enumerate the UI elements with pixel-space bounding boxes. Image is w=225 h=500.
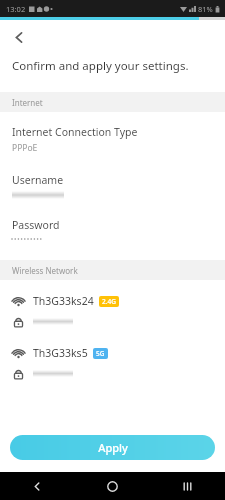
staticText: 2.4G: [102, 297, 116, 306]
staticText: 5G: [96, 349, 105, 358]
staticText: Internet Connection Type: [12, 125, 138, 139]
staticText: Th3G33ks24: [33, 294, 94, 308]
staticText: 81%: [198, 4, 213, 14]
button[interactable]: Th3G33ks24: [0, 294, 225, 328]
button[interactable]: Apply: [10, 435, 215, 460]
button[interactable]: Recents: [150, 472, 225, 500]
staticText: Username: [12, 173, 64, 187]
button[interactable]: Back: [0, 472, 75, 500]
staticText: Apply: [98, 440, 128, 455]
staticText: 13:02: [6, 4, 26, 14]
staticText: Th3G33ks5: [33, 346, 88, 360]
staticText: Wireless Network: [12, 265, 78, 276]
staticText: PPPoE: [12, 142, 38, 154]
staticText: Confirm and apply your settings.: [12, 58, 189, 74]
button[interactable]: Back: [2, 20, 36, 54]
staticText: Password: [12, 218, 60, 232]
button[interactable]: Th3G33ks5: [0, 346, 225, 380]
button[interactable]: Home: [75, 472, 150, 500]
staticText: Internet: [12, 97, 43, 108]
